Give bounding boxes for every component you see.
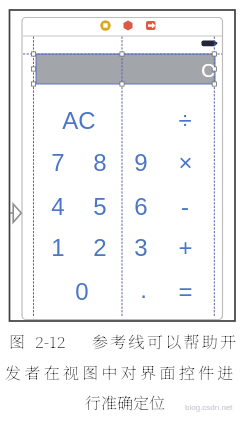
button[interactable]: 0 bbox=[52, 271, 112, 311]
staticText: 1 bbox=[51, 234, 65, 261]
staticText: ÷ bbox=[178, 107, 192, 134]
button[interactable]: AC bbox=[49, 100, 109, 140]
staticText: 图 bbox=[9, 330, 26, 353]
button[interactable]: × bbox=[155, 142, 215, 182]
staticText: 4 bbox=[51, 193, 65, 220]
button[interactable]: ÷ bbox=[155, 100, 215, 140]
button[interactable]: 3 bbox=[111, 227, 171, 267]
button[interactable]: 9 bbox=[111, 142, 171, 182]
staticText: 行准确定位 bbox=[85, 391, 166, 414]
staticText: 2-12 bbox=[35, 330, 66, 353]
staticText: 7 bbox=[51, 149, 65, 176]
staticText: 0 bbox=[75, 278, 89, 305]
staticText: - bbox=[181, 193, 189, 220]
staticText: 发者在视图中对界面控件进 bbox=[5, 361, 237, 384]
button[interactable]: . bbox=[113, 269, 173, 309]
staticText: AC bbox=[62, 107, 96, 134]
button[interactable]: 6 bbox=[111, 186, 171, 226]
button[interactable]: 1 bbox=[28, 227, 88, 267]
staticText: = bbox=[178, 278, 193, 305]
staticText: 参考线可以帮助开 bbox=[92, 330, 239, 353]
staticText: 8 bbox=[93, 149, 107, 176]
button[interactable]: - bbox=[155, 186, 215, 226]
staticText: 5 bbox=[93, 193, 107, 220]
button[interactable]: = bbox=[155, 271, 215, 311]
button[interactable]: + bbox=[155, 227, 215, 267]
staticText: blog.csdn.net bbox=[185, 403, 233, 412]
staticText: 6 bbox=[134, 193, 148, 220]
staticText: × bbox=[178, 149, 193, 176]
staticText: 3 bbox=[134, 234, 148, 261]
staticText: + bbox=[178, 234, 193, 261]
staticText: 9 bbox=[134, 149, 148, 176]
staticText: 2 bbox=[93, 234, 107, 261]
button[interactable]: 8 bbox=[70, 142, 130, 182]
button[interactable]: 4 bbox=[28, 186, 88, 226]
staticText: C bbox=[201, 60, 215, 81]
button[interactable]: 2 bbox=[70, 227, 130, 267]
staticText: . bbox=[140, 276, 147, 303]
button[interactable]: 7 bbox=[28, 142, 88, 182]
button[interactable]: 5 bbox=[70, 186, 130, 226]
